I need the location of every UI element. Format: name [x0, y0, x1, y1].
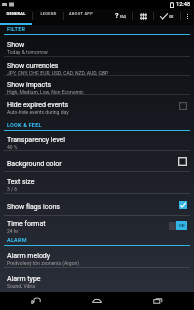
staticText: Show impacts: [7, 81, 52, 89]
staticText: 12:48: [176, 1, 191, 8]
button[interactable]: Time format: [0, 216, 194, 234]
staticText: 40 %: [7, 144, 18, 150]
staticText: 24 hr: [7, 228, 19, 234]
button[interactable]: Show impacts: [0, 76, 194, 95]
button[interactable]: Filter settings: [133, 9, 153, 25]
button[interactable]: Background color: [0, 151, 194, 172]
button[interactable]: Home: [72, 292, 122, 310]
staticText: ?: [115, 12, 119, 20]
staticText: Predvolený tón zvonenia (Argon): [7, 260, 80, 266]
button[interactable]: Show: [0, 35, 194, 57]
staticText: Sound, Vibra: [7, 283, 35, 289]
button[interactable]: FAQ: [109, 9, 132, 25]
staticText: Show: [7, 41, 25, 49]
staticText: GENERAL: [6, 11, 26, 16]
button[interactable]: OK: [154, 9, 180, 25]
staticText: Text size: [7, 178, 35, 186]
button[interactable]: Transparency level: [0, 131, 194, 151]
staticText: LEGEND: [40, 11, 57, 16]
button[interactable]: Alarm type: [0, 268, 194, 292]
button[interactable]: GENERAL: [0, 9, 32, 25]
button[interactable]: Show flags icons: [0, 194, 194, 216]
staticText: Show currencies: [7, 62, 59, 70]
button[interactable]: LEGEND: [33, 9, 63, 25]
staticText: Background color: [7, 160, 62, 168]
staticText: LOOK & FEEL: [7, 122, 42, 128]
staticText: Auto-hide events during day: [7, 109, 69, 115]
button[interactable]: Text size: [0, 172, 194, 194]
button[interactable]: Hide expired events: [0, 95, 194, 116]
staticText: FAQ: [120, 15, 127, 19]
staticText: JPY, CNY, CHF, EUR, USD, CAD, NZD, AUD, …: [7, 70, 109, 76]
staticText: ON: [179, 223, 185, 228]
staticText: Show flags icons: [7, 203, 60, 211]
staticText: Hide expired events: [7, 101, 69, 109]
staticText: Transparency level: [7, 136, 65, 144]
button[interactable]: More options: [181, 9, 194, 25]
staticText: Alarm type: [7, 275, 41, 283]
staticText: Alarm melody: [7, 252, 51, 260]
staticText: High, Medium, Low, Non Economic: [7, 89, 84, 95]
staticText: 3 / 6: [7, 186, 18, 192]
button[interactable]: Recent apps: [133, 292, 183, 310]
button[interactable]: ABOUT APP: [64, 9, 97, 25]
button[interactable]: Show currencies: [0, 57, 194, 76]
staticText: Today & tomorrow: [7, 49, 48, 55]
staticText: FILTER: [7, 26, 26, 32]
staticText: OK: [169, 15, 174, 19]
button[interactable]: Back: [11, 292, 61, 310]
staticText: Time format: [7, 220, 46, 228]
staticText: ABOUT APP: [69, 11, 93, 16]
button[interactable]: Alarm melody: [0, 246, 194, 268]
staticText: ALARM: [7, 237, 27, 243]
